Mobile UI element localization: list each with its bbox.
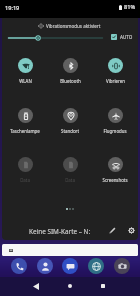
button[interactable]: Vibrieren	[93, 56, 137, 84]
staticText: Data	[20, 177, 30, 183]
button[interactable]: Flugmodus	[93, 106, 137, 134]
button[interactable]: Browser	[88, 258, 104, 274]
button[interactable]: Screenshots	[93, 155, 137, 183]
staticText: Data	[65, 177, 75, 183]
staticText: Vibrationsmodus aktiviert	[46, 23, 101, 29]
staticText: AUTO	[120, 34, 133, 40]
button[interactable]: Camera	[114, 258, 130, 274]
button[interactable]: Standort	[48, 106, 92, 134]
staticText: 81%	[124, 3, 136, 11]
button[interactable]: Recents	[95, 278, 111, 294]
staticText: 19:19	[5, 4, 20, 12]
button[interactable]: Messages	[62, 258, 78, 274]
button[interactable]: Home	[62, 278, 78, 294]
button[interactable]: Contacts	[37, 258, 53, 274]
button[interactable]: WLAN	[3, 56, 47, 84]
button[interactable]: AUTO	[110, 33, 134, 41]
staticText: Bluetooth	[60, 78, 81, 84]
button[interactable]: Back	[28, 278, 44, 294]
button[interactable]: Data	[48, 155, 92, 183]
staticText: Keine SIM-Karte – N:	[29, 227, 91, 236]
staticText: WLAN	[19, 78, 32, 84]
button[interactable]: Taschenlampe	[3, 106, 47, 134]
button[interactable]: Search	[2, 244, 138, 256]
button[interactable]: Settings	[125, 224, 138, 237]
staticText: Flugmodus	[103, 128, 127, 134]
staticText: Taschenlampe	[10, 128, 40, 134]
button[interactable]: Phone	[11, 258, 27, 274]
button[interactable]: Edit quick settings	[106, 224, 119, 237]
staticText: Vibrieren	[106, 78, 125, 84]
staticText: Screenshots	[102, 177, 128, 183]
staticText: Standort	[61, 128, 79, 134]
button[interactable]: Data	[3, 155, 47, 183]
button[interactable]: Bluetooth	[48, 56, 92, 84]
